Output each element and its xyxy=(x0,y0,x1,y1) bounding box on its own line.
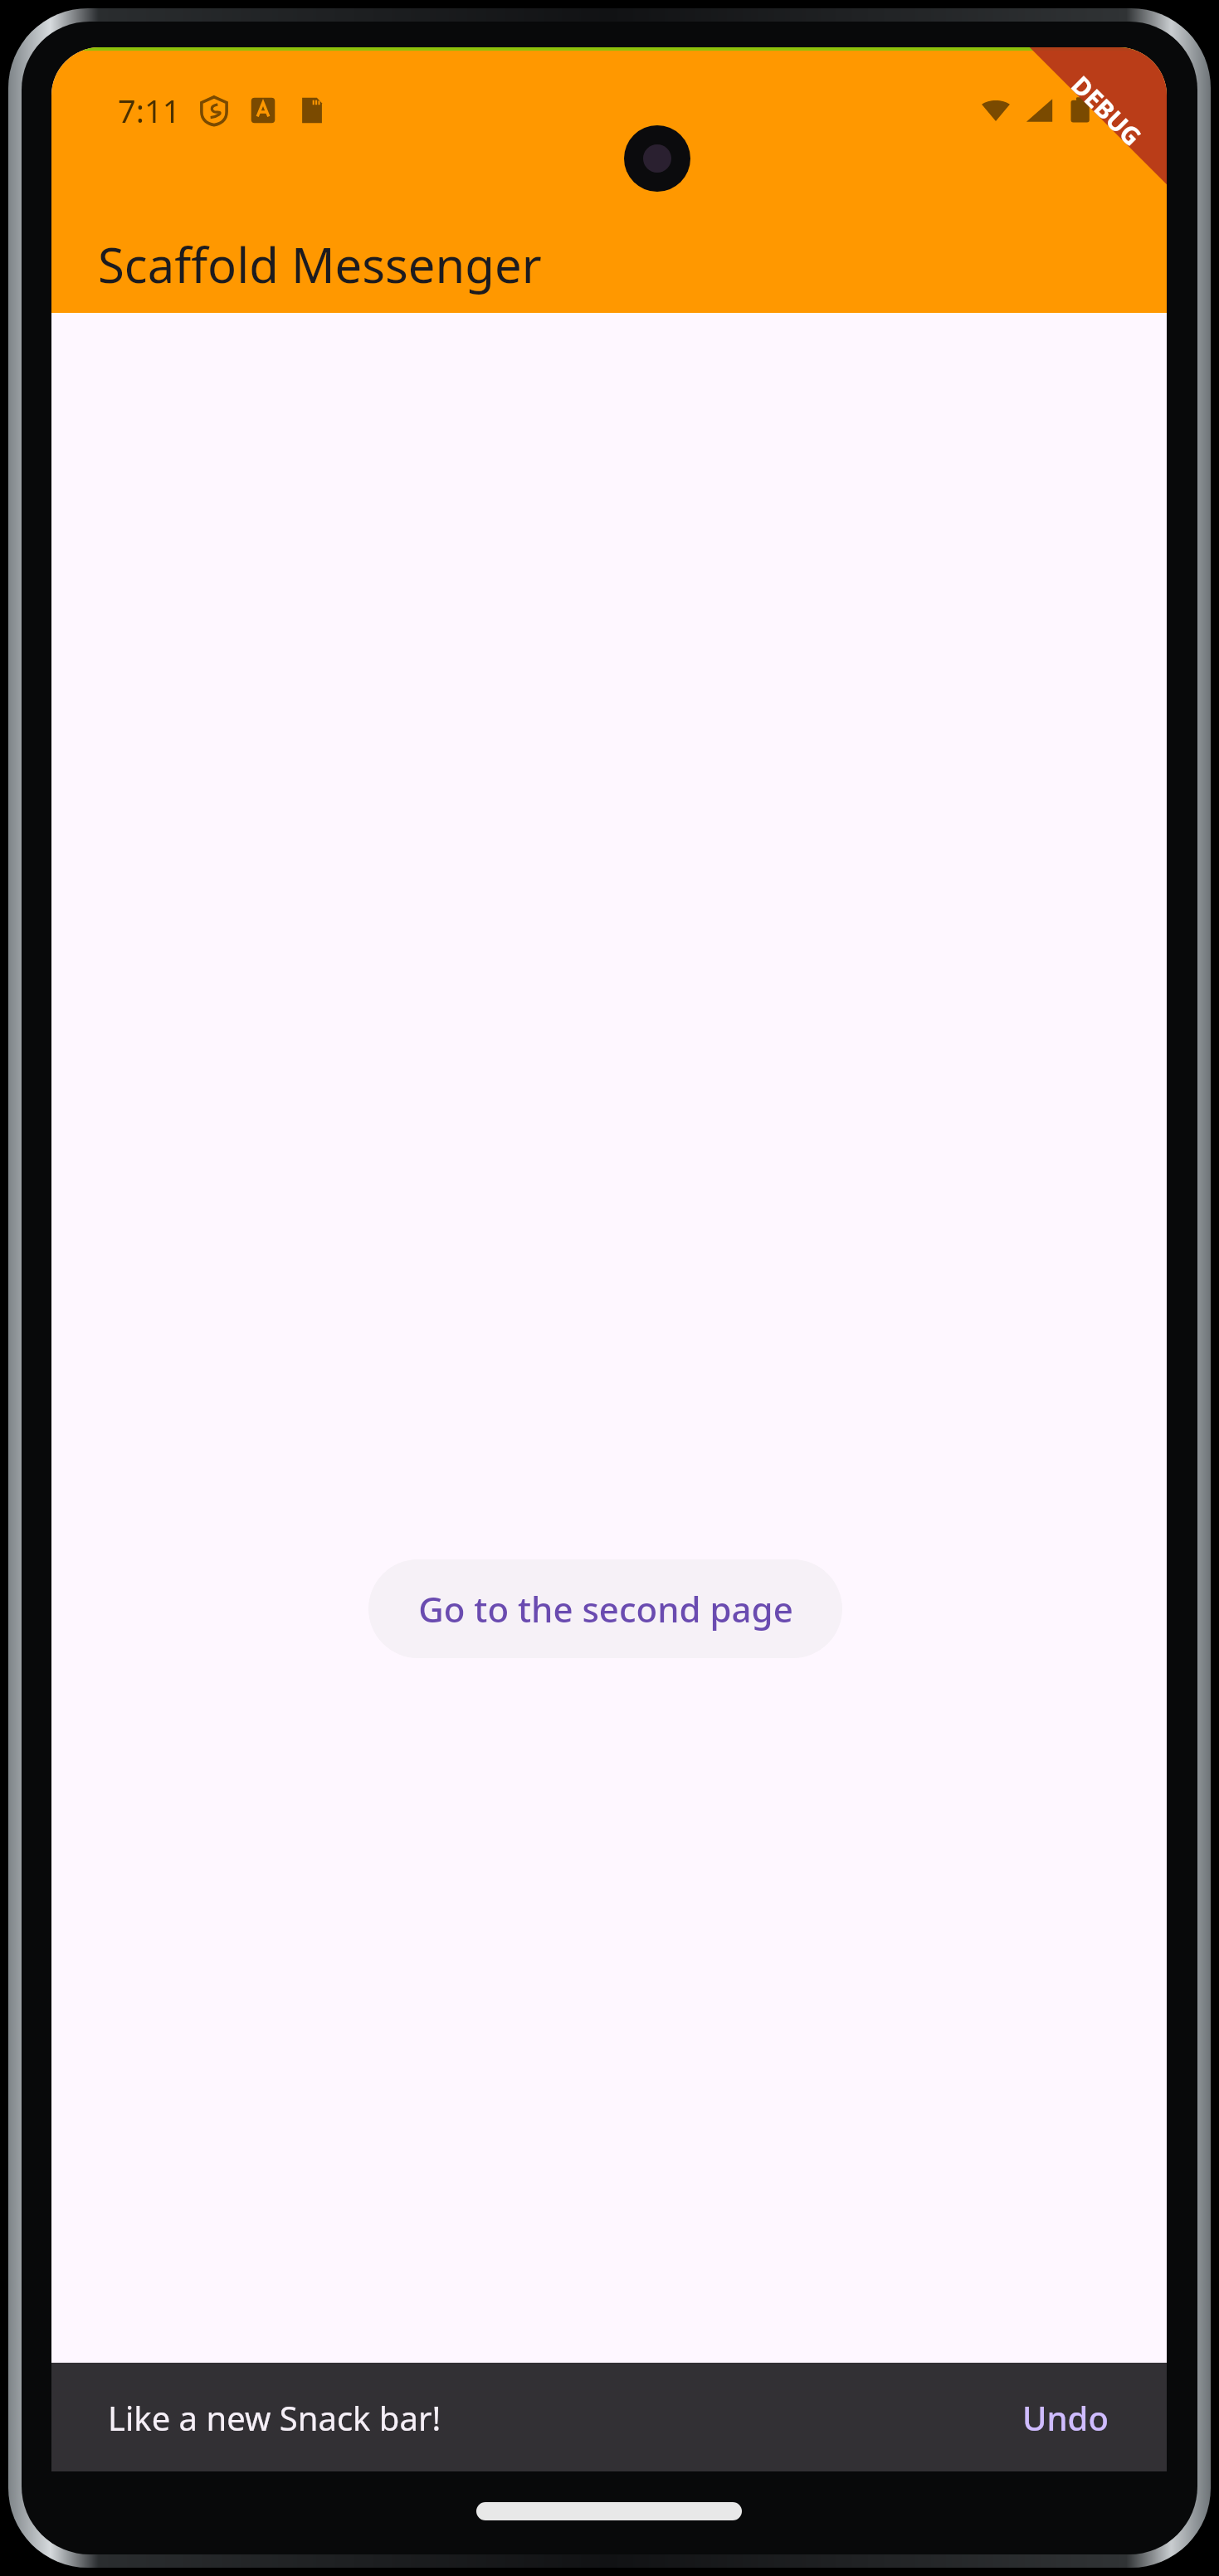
staticText: 7:11 xyxy=(118,89,181,132)
staticText: Undo xyxy=(1022,2395,1109,2440)
button[interactable]: Like xyxy=(985,2403,1124,2471)
button[interactable]: Go to the second page xyxy=(368,1559,842,1658)
staticText: Scaffold Messenger xyxy=(98,232,542,297)
staticText: Go to the second page xyxy=(418,1585,793,1632)
staticText: Like a new Snack bar! xyxy=(108,2395,441,2440)
staticText: DEBUG xyxy=(1064,68,1149,153)
button[interactable]: Undo xyxy=(1011,2387,1120,2448)
